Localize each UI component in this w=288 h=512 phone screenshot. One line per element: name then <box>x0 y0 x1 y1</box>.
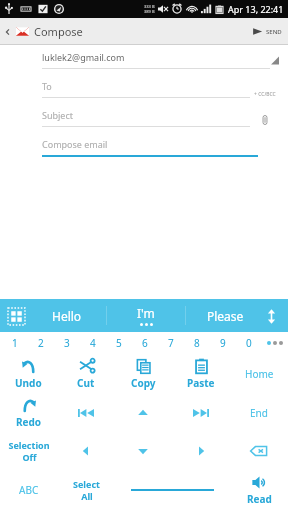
staticText: 8 <box>194 336 200 350</box>
button[interactable]: 8 <box>184 332 210 354</box>
button[interactable]: Forward <box>172 394 230 432</box>
staticText: SEND <box>266 28 282 36</box>
button[interactable]: luklek2@gmail.com <box>42 51 280 69</box>
button[interactable]: Right <box>172 432 230 470</box>
staticText: Cut <box>77 376 95 390</box>
staticText: All <box>81 490 93 502</box>
button[interactable]: Selection <box>0 432 57 470</box>
button[interactable]: 0 <box>236 332 262 354</box>
button[interactable]: Resize keyboard <box>260 305 282 327</box>
button[interactable]: Redo <box>0 394 57 432</box>
staticText: 9 <box>220 336 226 350</box>
other: Attach <box>258 113 272 127</box>
button[interactable]: Select <box>57 470 115 510</box>
button[interactable]: Backspace <box>230 432 288 470</box>
button[interactable]: Hello <box>28 299 106 332</box>
button[interactable]: Home <box>230 354 288 394</box>
staticText: 1 <box>12 336 18 350</box>
button[interactable]: Down <box>114 432 172 470</box>
staticText: Please <box>207 308 244 324</box>
button[interactable]: Read <box>230 470 288 510</box>
button[interactable]: + CC/BCC <box>250 91 280 98</box>
staticText: Undo <box>15 376 42 390</box>
button[interactable]: Copy <box>114 354 172 394</box>
button[interactable]: 7 <box>158 332 184 354</box>
button[interactable]: Left <box>57 432 114 470</box>
button[interactable]: Please <box>186 299 264 332</box>
button[interactable]: Up <box>114 394 172 432</box>
staticText: 4 <box>90 336 96 350</box>
button[interactable]: Subject <box>42 109 250 127</box>
staticText: Apr 13, 22:41 <box>228 3 284 15</box>
staticText: Home <box>245 367 274 381</box>
staticText: I'm <box>137 305 155 321</box>
button[interactable]: 2 <box>28 332 54 354</box>
button[interactable]: Keyboard modes <box>6 306 26 326</box>
staticText: To <box>42 80 52 92</box>
button[interactable]: SEND <box>246 26 288 37</box>
button[interactable]: To <box>42 80 250 98</box>
button[interactable]: Attach <box>250 113 280 127</box>
staticText: 6 <box>142 336 148 350</box>
button[interactable]: 4 <box>80 332 106 354</box>
staticText: 389 B <box>144 9 155 14</box>
button[interactable]: Rewind <box>57 394 114 432</box>
button[interactable]: 6 <box>132 332 158 354</box>
button[interactable]: 9 <box>210 332 236 354</box>
staticText: Read <box>247 492 272 506</box>
button[interactable]: Cut <box>57 354 114 394</box>
button[interactable]: End <box>230 394 288 432</box>
staticText: ABC <box>19 483 39 497</box>
staticText: 333 B <box>144 4 155 9</box>
button[interactable]: I'm <box>107 299 185 332</box>
button[interactable]: 3 <box>54 332 80 354</box>
staticText: End <box>250 406 268 420</box>
staticText: Hello <box>52 308 82 324</box>
staticText: 2 <box>38 336 44 350</box>
staticText: Subject <box>42 109 74 121</box>
staticText: 3 <box>64 336 70 350</box>
button[interactable]: Back <box>0 24 89 39</box>
button[interactable]: Undo <box>0 354 57 394</box>
button[interactable]: Paste <box>172 354 230 394</box>
staticText: Selection <box>8 439 50 451</box>
staticText: 7 <box>168 336 174 350</box>
staticText: Select <box>73 478 100 490</box>
button[interactable]: 5 <box>106 332 132 354</box>
staticText: Off <box>22 451 37 463</box>
button[interactable]: ABC <box>0 470 57 510</box>
staticText: Compose email <box>42 138 108 150</box>
staticText: Copy <box>131 376 156 390</box>
button[interactable]: 1 <box>2 332 28 354</box>
staticText: 5 <box>116 336 122 350</box>
staticText: luklek2@gmail.com <box>42 51 125 63</box>
button[interactable]: Compose email <box>42 138 280 157</box>
staticText: + CC/BCC <box>254 91 276 98</box>
staticText: Compose <box>34 24 83 39</box>
button[interactable]: Space <box>115 470 230 510</box>
button[interactable]: More <box>262 332 288 354</box>
staticText: 0 <box>246 336 252 350</box>
staticText: Redo <box>16 415 42 429</box>
staticText: Paste <box>187 376 215 390</box>
